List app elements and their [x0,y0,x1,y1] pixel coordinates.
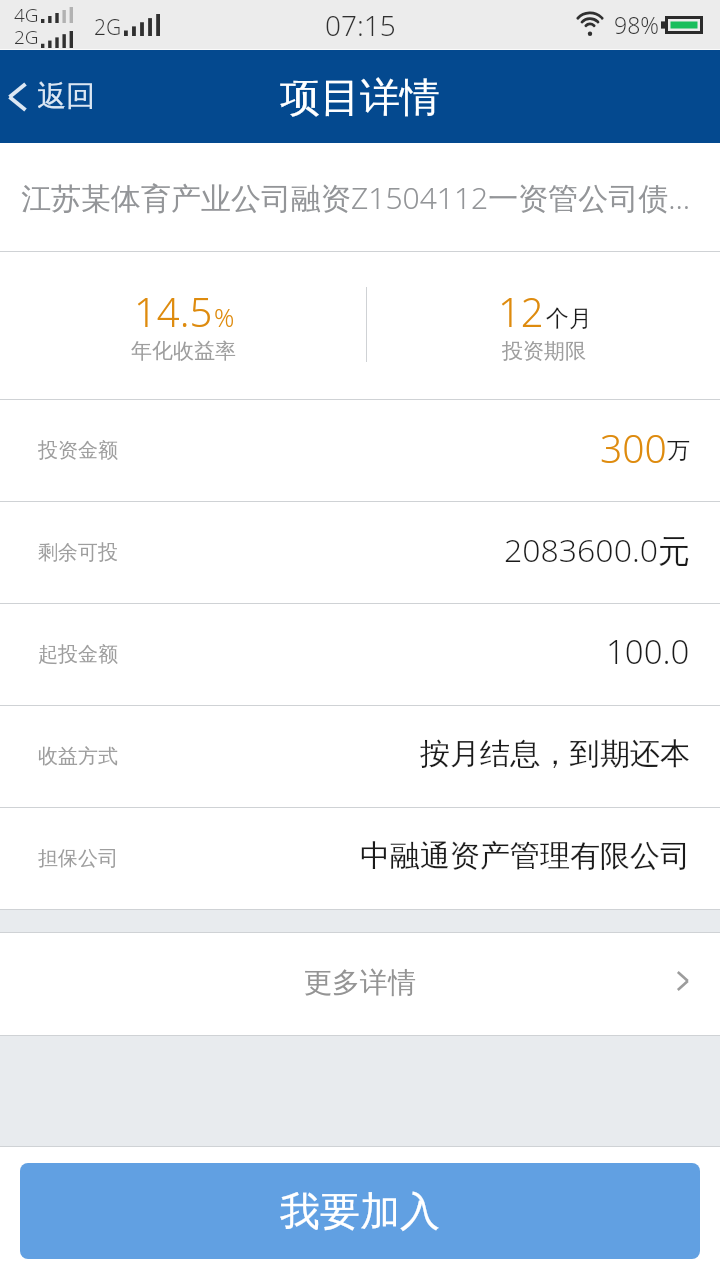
staticText: 300 [600,421,667,474]
staticText: 担保公司 [38,846,118,871]
staticText: 收益方式 [38,744,118,769]
staticText: 剩余可投 [38,540,118,565]
staticText: 返回 [37,78,95,115]
staticText: 更多详情 [304,965,416,1000]
staticText: 投资金额 [38,438,118,463]
button[interactable]: 剩余可投 [0,502,720,603]
button[interactable]: 担保公司 [0,808,720,909]
button[interactable]: 投资金额 [0,400,720,501]
staticText: 4G [14,2,39,28]
staticText: 年化收益率 [131,338,236,364]
staticText: 起投金额 [38,642,118,667]
staticText: 江苏某体育产业公司融资Z1504112一资管公司债... [21,177,691,218]
staticText: 2083600.0元 [504,528,690,572]
staticText: 07:15 [325,6,396,44]
staticText: 98% [614,9,659,40]
staticText: 投资期限 [502,338,586,364]
button[interactable]: 起投金额 [0,604,720,705]
staticText: % [214,300,235,334]
staticText: 个月 [546,304,592,333]
button[interactable]: 返回 [0,50,111,143]
staticText: 100.0 [606,629,690,674]
button[interactable]: 更多详情 [0,933,720,1035]
button[interactable]: 收益方式 [0,706,720,807]
staticText: 项目详情 [280,72,440,122]
staticText: 2G [14,24,39,50]
button[interactable]: 我要加入 [20,1163,700,1259]
staticText: 中融通资产管理有限公司 [360,837,690,875]
staticText: 12 [498,284,544,338]
staticText: 万 [667,436,690,465]
staticText: 14.5 [134,284,213,338]
staticText: 2G [94,13,122,42]
staticText: 按月结息，到期还本 [420,735,690,773]
staticText: 我要加入 [280,1186,440,1236]
